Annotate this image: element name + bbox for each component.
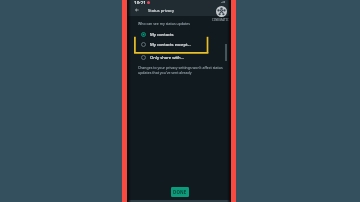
staticText: 10:21	[134, 0, 146, 4]
staticText: Who can see my status updates	[138, 21, 190, 26]
button[interactable]: Back	[133, 6, 141, 14]
button[interactable]: My contacts	[127, 29, 231, 40]
button[interactable]: Only share with...	[127, 52, 231, 63]
staticText: CINEMATIC	[212, 18, 230, 22]
staticText: My contacts except...	[150, 42, 191, 48]
button[interactable]: My contacts except...	[127, 39, 231, 50]
staticText: My contacts	[150, 32, 174, 38]
staticText: Changes to your privacy settings won't a…	[138, 65, 223, 75]
button[interactable]: DONE	[171, 187, 189, 197]
staticText: DONE	[173, 189, 187, 195]
staticText: Status privacy	[148, 8, 175, 13]
staticText: Only share with...	[150, 55, 185, 61]
